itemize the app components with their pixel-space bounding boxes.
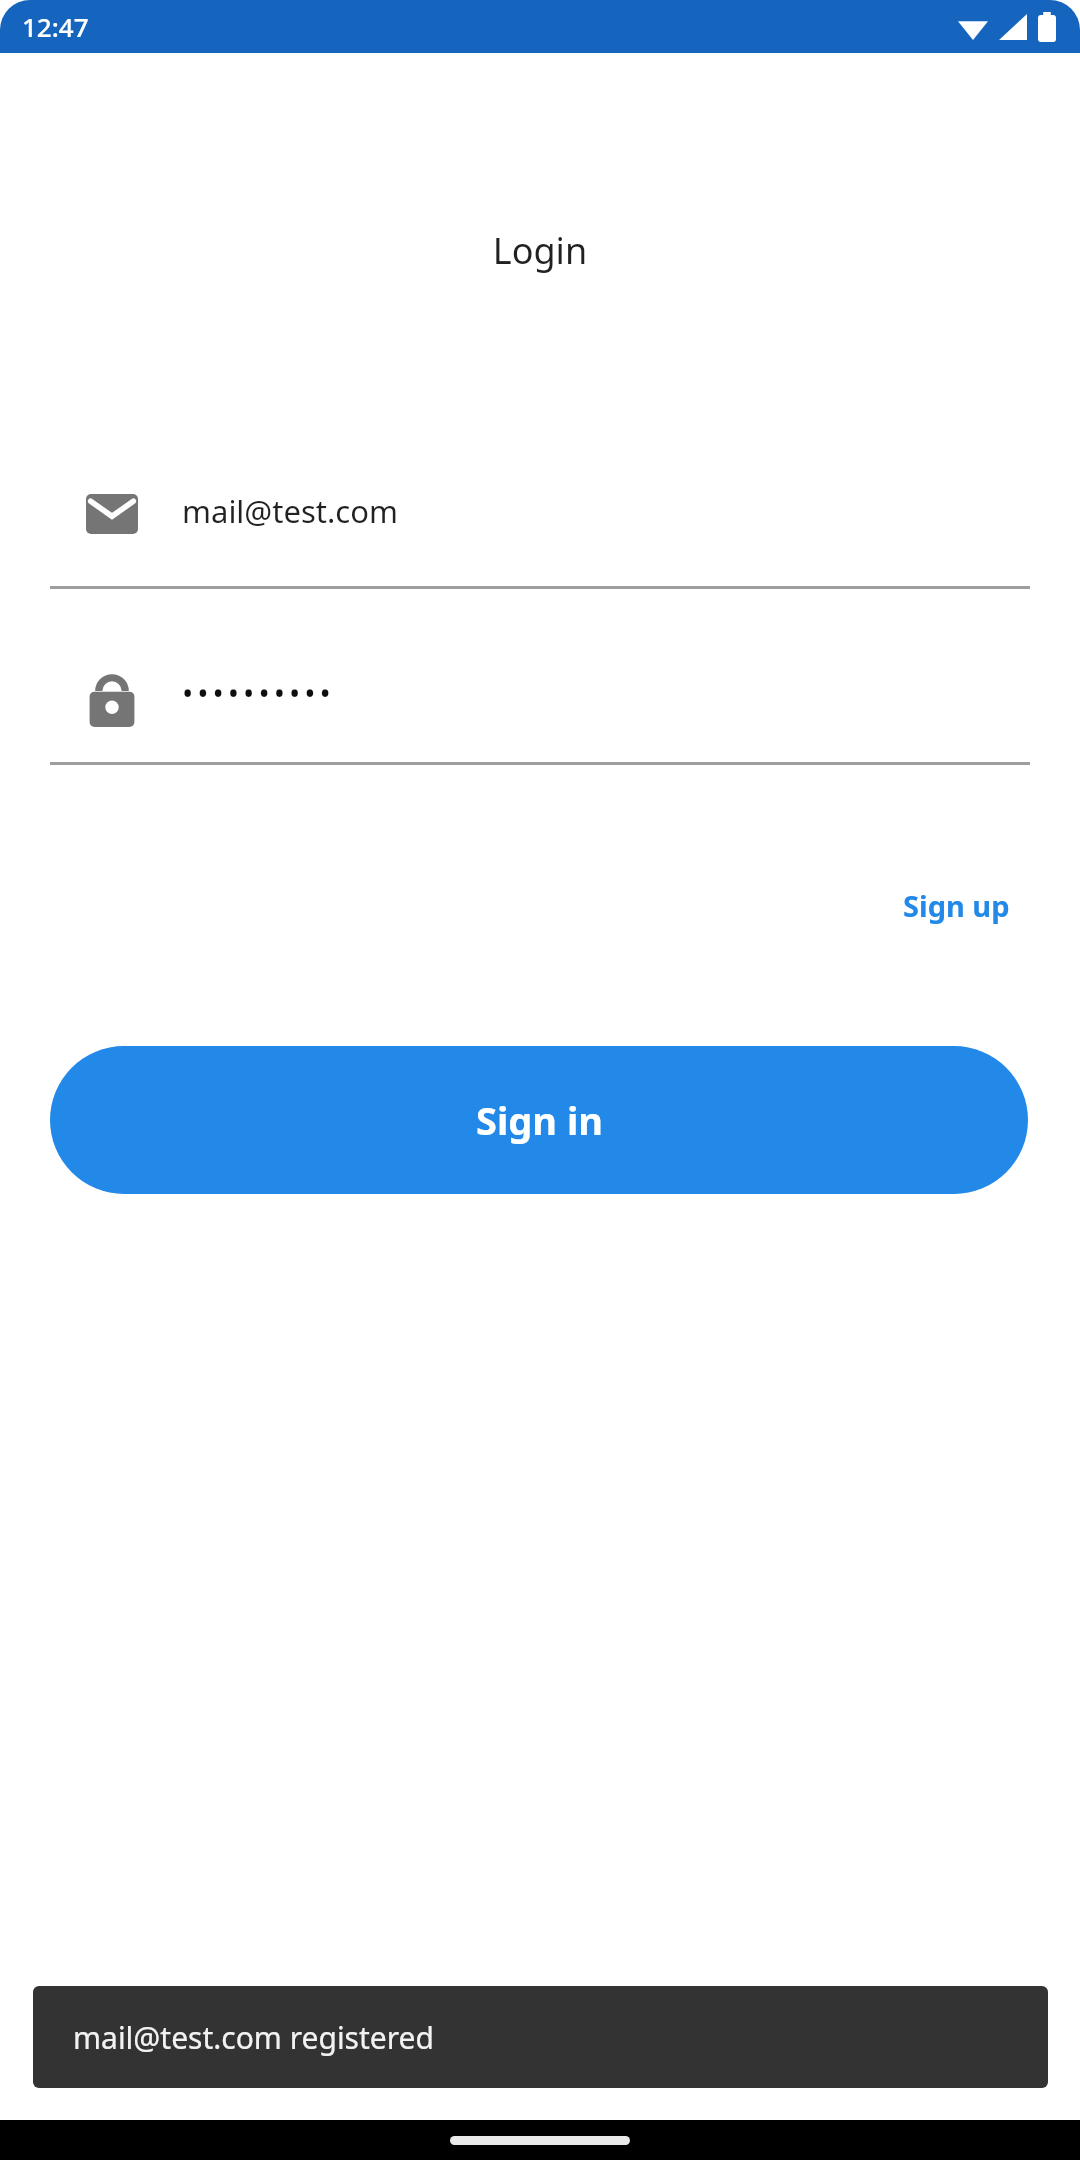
other: Email — [86, 494, 138, 534]
staticText: Sign up — [903, 886, 1010, 925]
staticText: Login — [0, 226, 1080, 275]
staticText: mail@test.com registered — [73, 2017, 434, 2058]
staticText: 12:47 — [22, 9, 89, 44]
button[interactable]: Password — [50, 645, 1030, 765]
staticText: mail@test.com — [182, 490, 398, 532]
other: Password — [84, 665, 140, 727]
button[interactable]: Sign up — [833, 876, 1080, 935]
button[interactable]: Sign in — [50, 1046, 1028, 1194]
button[interactable]: Email — [50, 468, 1030, 589]
staticText: Sign in — [476, 1094, 603, 1146]
staticText: •••••••••• — [182, 673, 335, 714]
